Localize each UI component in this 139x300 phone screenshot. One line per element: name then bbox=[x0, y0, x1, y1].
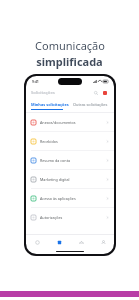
button[interactable]: Messages bbox=[70, 235, 92, 249]
staticText: Acesso às aplicações bbox=[40, 196, 106, 201]
staticText: Marketing digital bbox=[40, 177, 106, 182]
staticText: Outras solicitações bbox=[73, 102, 108, 107]
staticText: Anexos/documentos bbox=[40, 120, 106, 125]
button[interactable]: Requests bbox=[48, 235, 70, 249]
button[interactable]: Marketing digital bbox=[26, 170, 114, 188]
staticText: Solicitações bbox=[31, 90, 92, 96]
button[interactable]: Outras solicitações bbox=[70, 99, 109, 112]
button[interactable]: Acesso às aplicações bbox=[26, 189, 114, 207]
button[interactable]: Profile bbox=[92, 235, 114, 249]
button[interactable]: Resumo da conta bbox=[26, 151, 114, 169]
staticText: Resumo da conta bbox=[40, 158, 106, 163]
button[interactable]: Minhas solicitações bbox=[31, 99, 70, 112]
button[interactable]: Home bbox=[26, 235, 48, 249]
staticText: Minhas solicitações bbox=[31, 102, 69, 107]
button[interactable]: Search bbox=[92, 89, 100, 97]
button[interactable]: Notifications bbox=[101, 89, 109, 97]
staticText: Comunicação bbox=[35, 38, 105, 53]
staticText: Recebidos bbox=[40, 139, 106, 144]
staticText: simplificada bbox=[36, 54, 103, 69]
staticText: 9:41 bbox=[32, 79, 39, 84]
button[interactable]: Recebidos bbox=[26, 132, 114, 150]
button[interactable]: Autorizações bbox=[26, 208, 114, 226]
button[interactable]: Anexos/documentos bbox=[26, 113, 114, 131]
staticText: Autorizações bbox=[40, 215, 106, 220]
